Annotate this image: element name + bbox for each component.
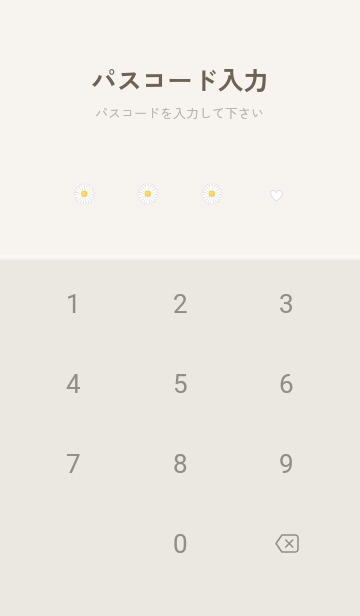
staticText: 8 [173, 449, 188, 479]
staticText: 3 [279, 289, 294, 319]
button[interactable]: 5 [144, 354, 216, 414]
button[interactable]: 9 [250, 434, 322, 494]
button[interactable]: 3 [250, 274, 322, 334]
button[interactable]: 1 [37, 274, 109, 334]
button[interactable]: 8 [144, 434, 216, 494]
button[interactable]: Delete [250, 513, 322, 573]
staticText: 1 [66, 289, 81, 319]
staticText: 4 [66, 369, 81, 399]
staticText: パスコード入力 [91, 61, 269, 98]
staticText: 2 [173, 289, 188, 319]
button[interactable]: 4 [37, 354, 109, 414]
button[interactable]: 6 [250, 354, 322, 414]
staticText: 9 [279, 449, 294, 479]
staticText: 7 [66, 449, 81, 479]
button[interactable]: 2 [144, 274, 216, 334]
staticText: 5 [173, 369, 188, 399]
staticText: パスコードを入力して下さい [95, 103, 265, 122]
button[interactable]: 7 [37, 434, 109, 494]
button[interactable]: 0 [144, 514, 216, 574]
staticText: 0 [173, 529, 188, 559]
staticText: 6 [279, 369, 294, 399]
